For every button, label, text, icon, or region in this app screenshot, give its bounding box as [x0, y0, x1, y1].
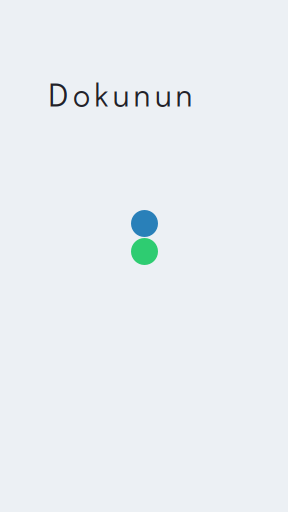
button[interactable]: Dokunun: [131, 210, 158, 265]
staticText: Dokunun: [48, 73, 193, 115]
